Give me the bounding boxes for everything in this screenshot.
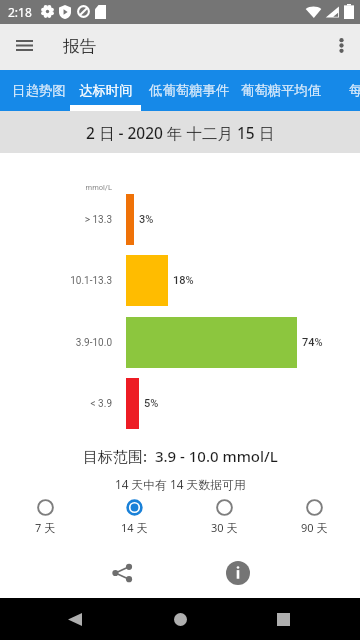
button[interactable]: 日趋势图 [4,70,74,111]
button[interactable]: Home [159,598,201,640]
button[interactable]: 低葡萄糖事件 [141,70,238,111]
staticText: 7 天 [35,520,56,535]
button[interactable]: 葡萄糖平均值 [238,70,325,111]
staticText: 90 天 [301,520,328,535]
button[interactable]: 每日 [325,70,360,111]
staticText: 目标范围: 3.9 - 10.0 mmol/L [83,446,278,466]
staticText: 14 天 [121,520,148,535]
staticText: 日趋势图 [12,82,66,99]
button[interactable]: Recents [262,598,304,640]
button[interactable]: Info [217,552,259,594]
staticText: > 13.3 [0,214,112,226]
button[interactable]: 14 天 [106,499,162,539]
staticText: 3% [139,213,154,226]
button[interactable]: Share [101,552,143,594]
staticText: 2 日 - 2020 年 十二月 15 日 [86,122,275,143]
staticText: 报告 [63,36,96,57]
staticText: 每日 [349,82,360,99]
staticText: 14 天中有 14 天数据可用 [115,476,246,492]
button[interactable]: More options [323,27,359,63]
button[interactable]: 7 天 [17,499,73,539]
staticText: 74% [302,336,323,349]
staticText: 低葡萄糖事件 [149,82,230,99]
staticText: 3.9-10.0 [0,337,112,349]
staticText: < 3.9 [0,398,112,410]
button[interactable]: 90 天 [286,499,342,539]
button[interactable]: Menu [6,27,42,63]
button[interactable]: 30 天 [196,499,252,539]
staticText: 达标时间 [79,82,133,99]
staticText: mmol/L [0,183,112,192]
staticText: 10.1-13.3 [0,275,112,287]
button[interactable]: 达标时间 [70,70,141,111]
staticText: 5% [144,397,159,410]
staticText: 30 天 [211,520,238,535]
staticText: 葡萄糖平均值 [241,82,322,99]
staticText: 18% [173,274,194,287]
staticText: 2:18 [8,4,32,20]
button[interactable]: Back [54,598,96,640]
